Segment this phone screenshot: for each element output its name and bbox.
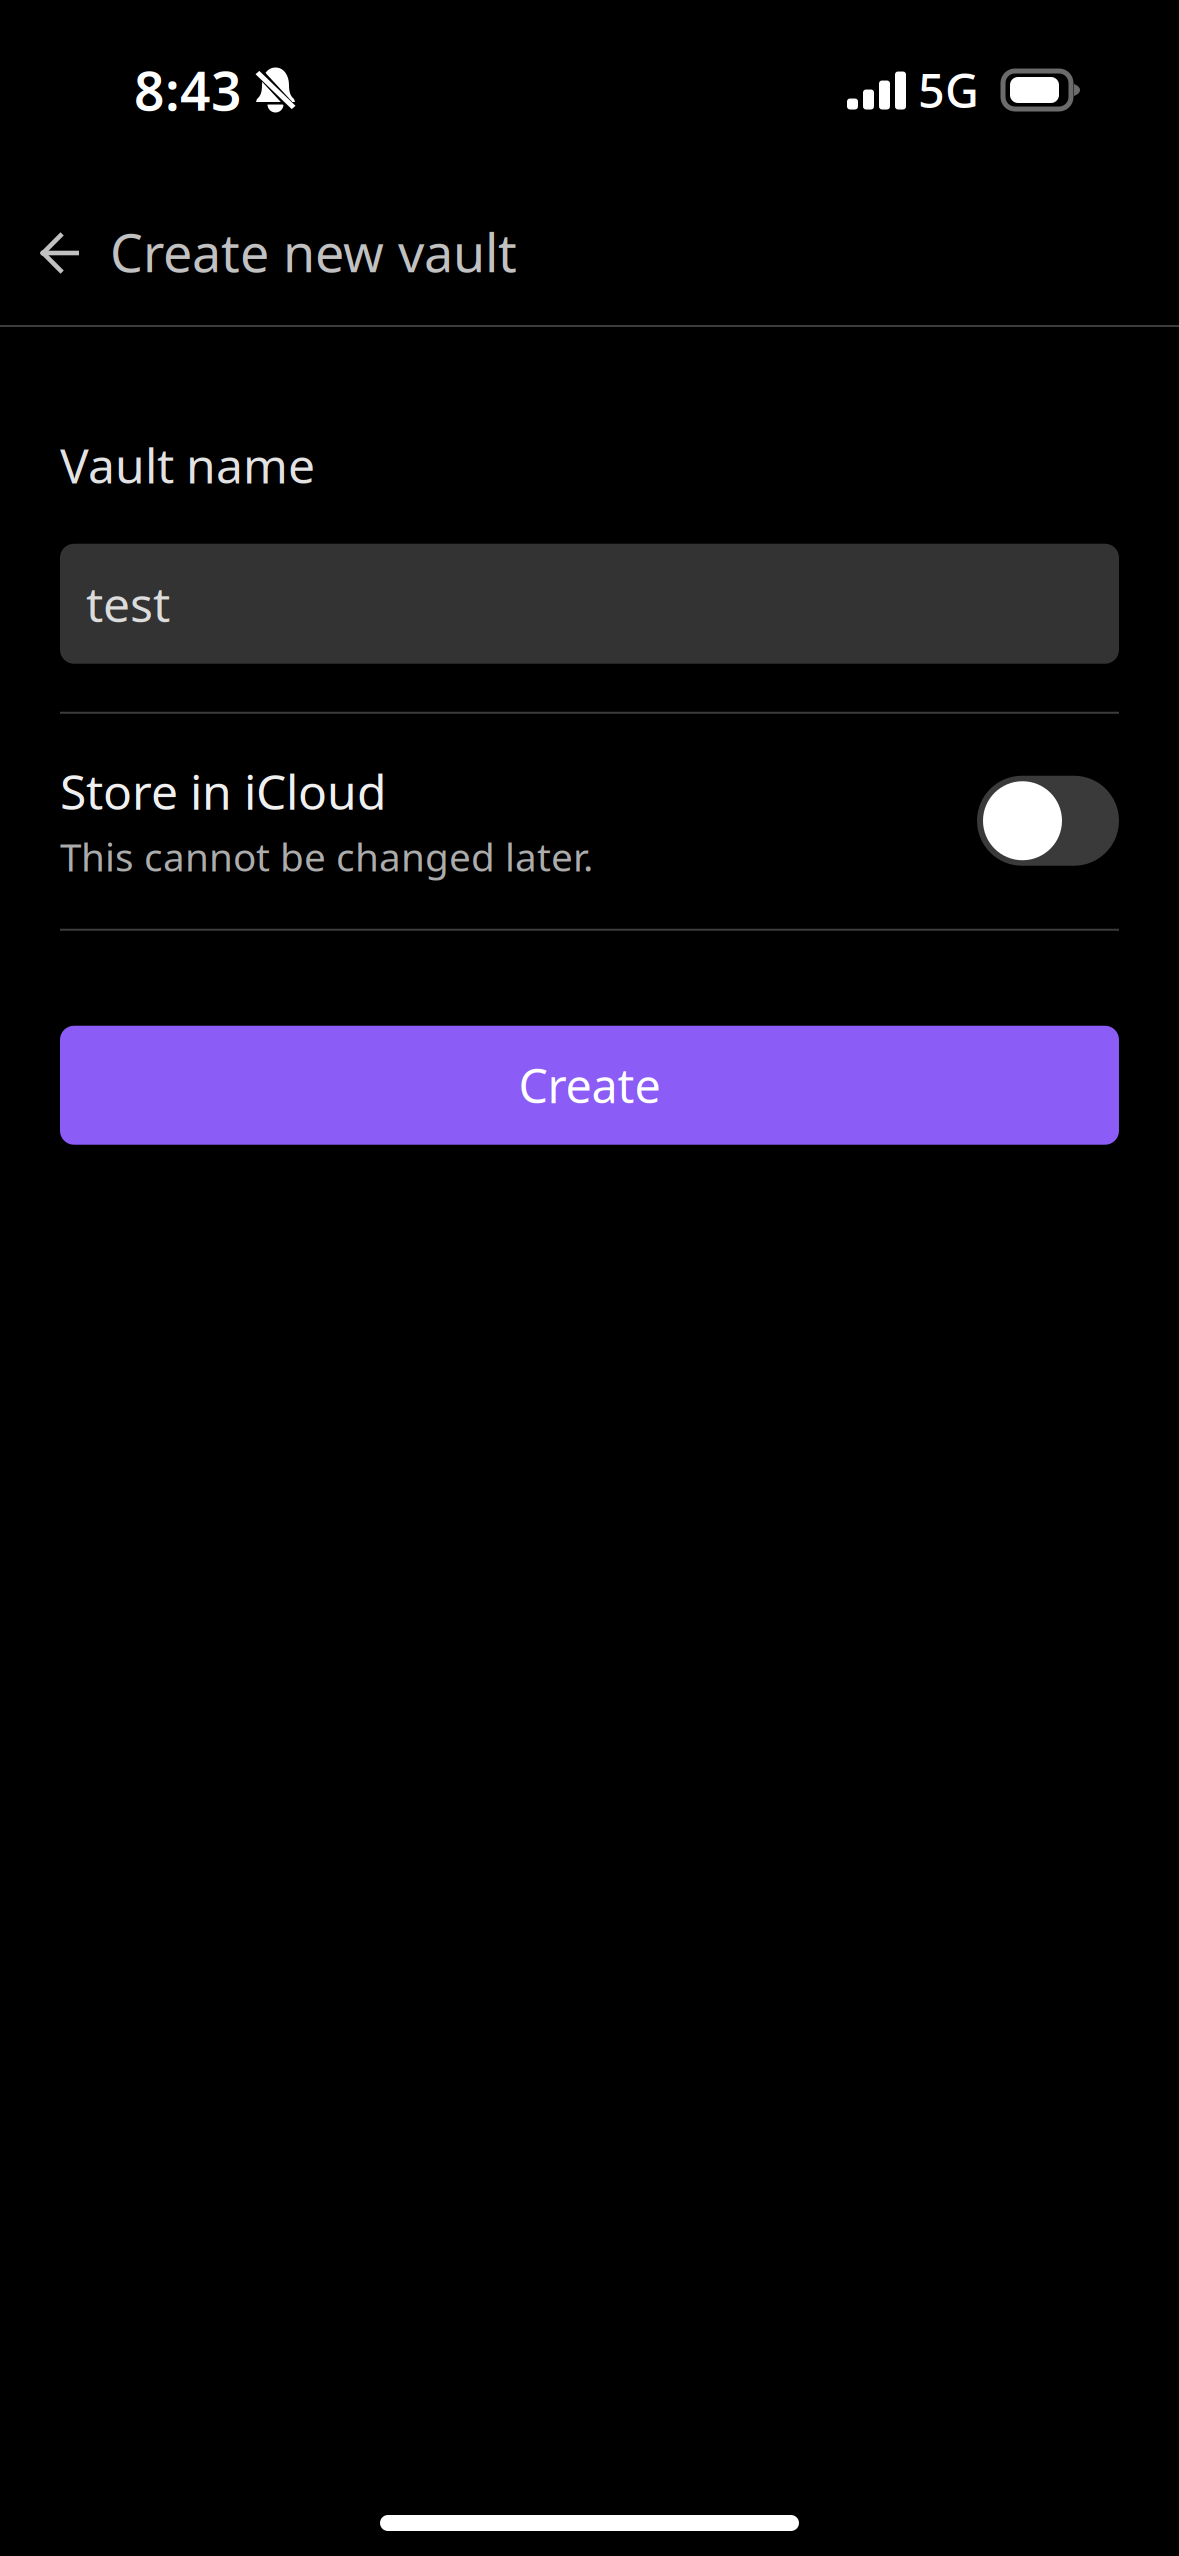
staticText: Create new vault (110, 217, 517, 287)
button[interactable]: Store in iCloud (60, 740, 1119, 902)
staticText: Store in iCloud (60, 759, 387, 823)
staticText: This cannot be changed later. (60, 831, 593, 882)
staticText: 5G (918, 59, 979, 121)
button[interactable]: Create (60, 1026, 1119, 1145)
staticText: test (86, 572, 170, 636)
staticText: 8:43 (134, 55, 242, 125)
staticText: Create (518, 1054, 660, 1116)
staticText: Vault name (60, 433, 315, 497)
button[interactable]: Back (18, 203, 102, 301)
